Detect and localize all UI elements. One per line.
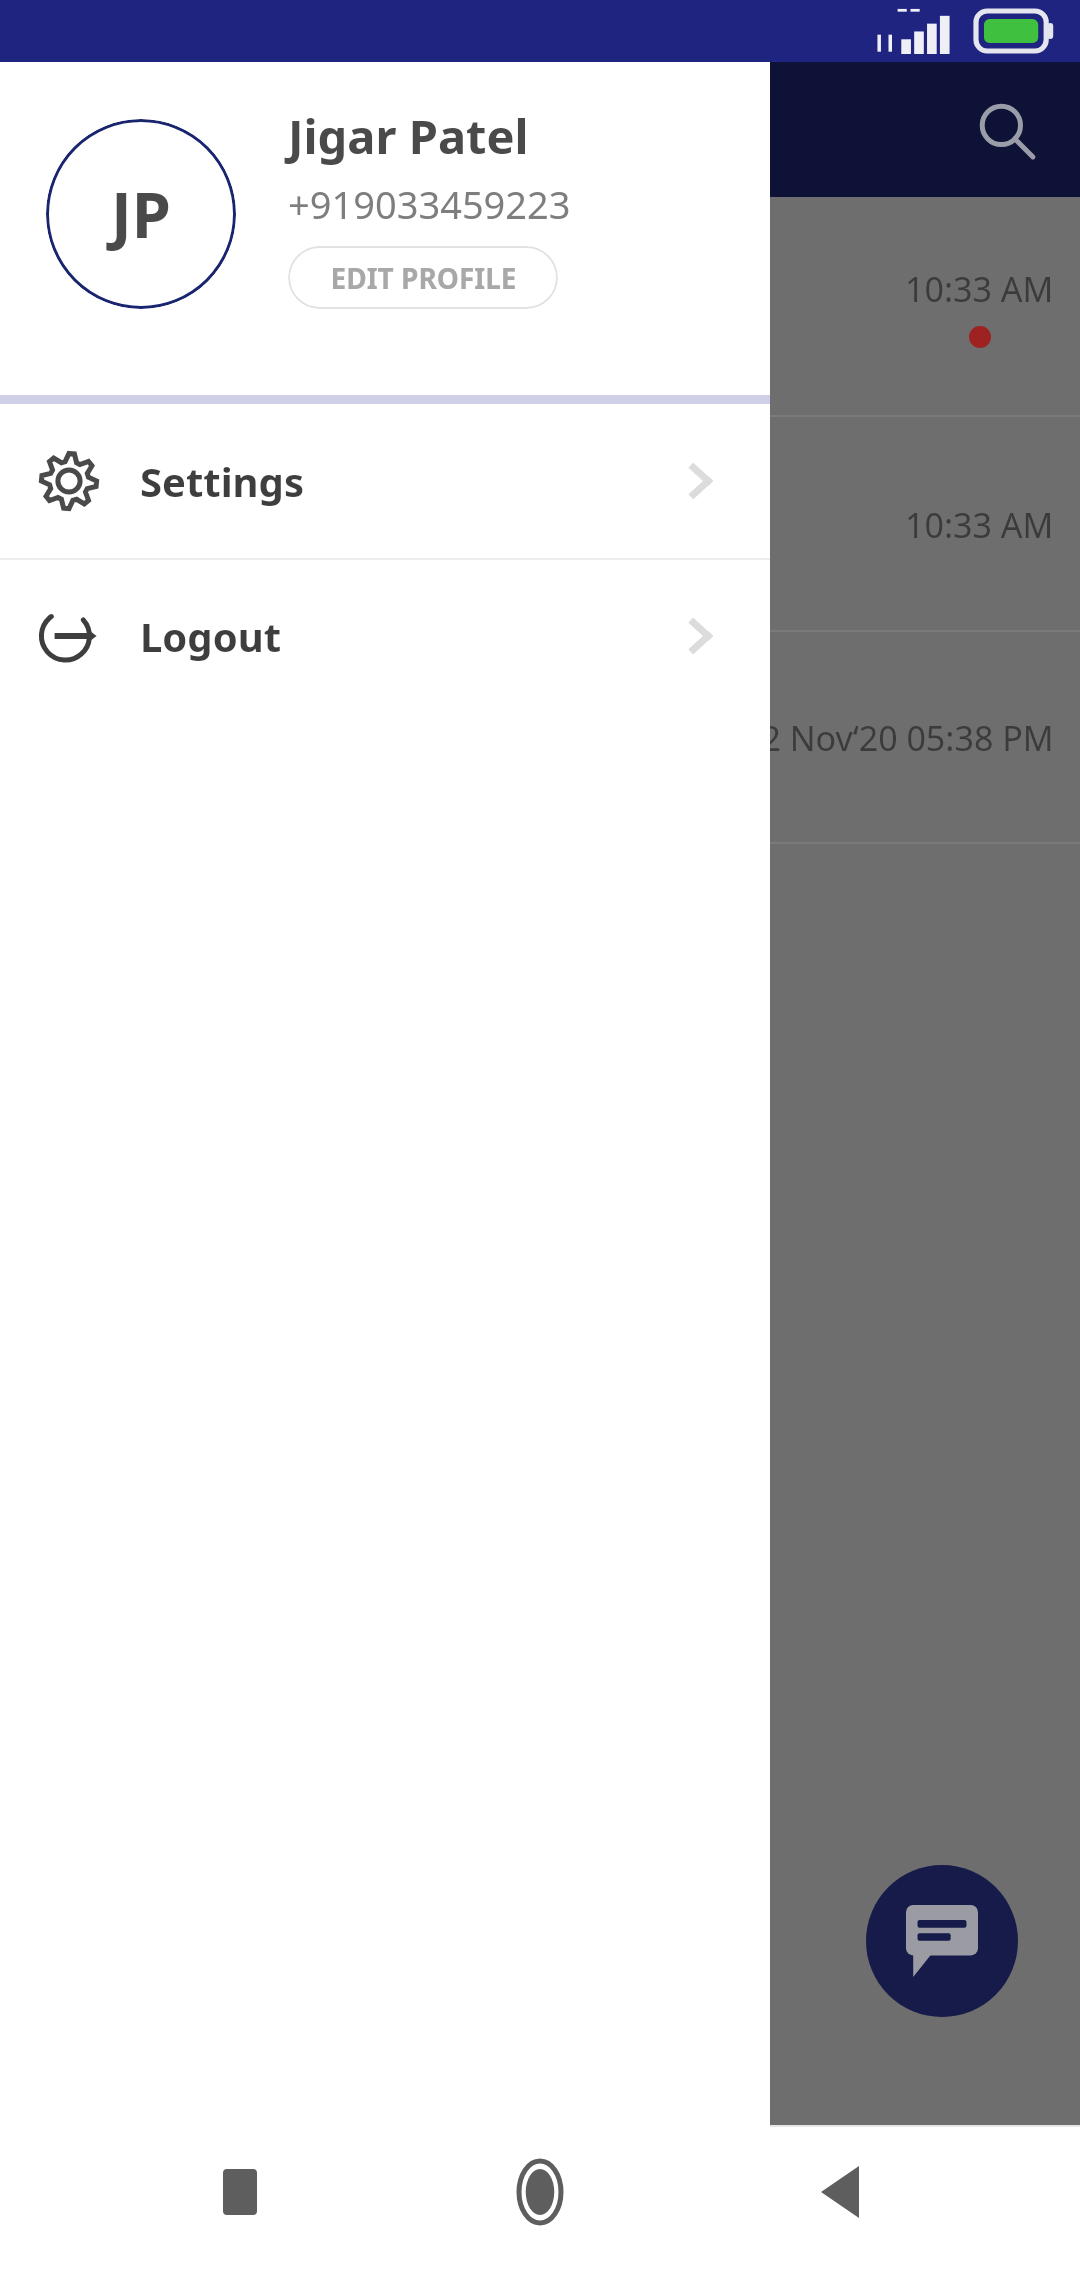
button[interactable]: Home [390,2127,690,2257]
staticText: 10:33 AM [905,266,1054,312]
staticText: JP [111,171,171,257]
staticText: +919033459223 [288,178,571,230]
button[interactable]: EDIT PROFILE [288,246,558,309]
staticText: Settings [140,454,304,508]
button[interactable]: Search [958,82,1054,178]
button[interactable]: 02 Nov‘20 05:38 PM [0,632,1080,844]
button[interactable]: JP [46,119,236,309]
button[interactable]: Settings [0,404,770,558]
staticText: 02 Nov‘20 05:38 PM [742,715,1054,761]
button[interactable]: Recents [90,2127,390,2257]
button[interactable]: 10:33 AM [0,197,1080,417]
staticText: Jigar Patel [288,104,529,168]
button[interactable]: New message [866,1865,1018,2017]
staticText: 10:33 AM [905,502,1054,548]
staticText: EDIT PROFILE [330,259,517,297]
button[interactable]: 10:33 AM [0,417,1080,632]
staticText: Logout [140,609,281,663]
button[interactable]: Back [690,2127,990,2257]
button[interactable]: Logout [0,560,770,712]
